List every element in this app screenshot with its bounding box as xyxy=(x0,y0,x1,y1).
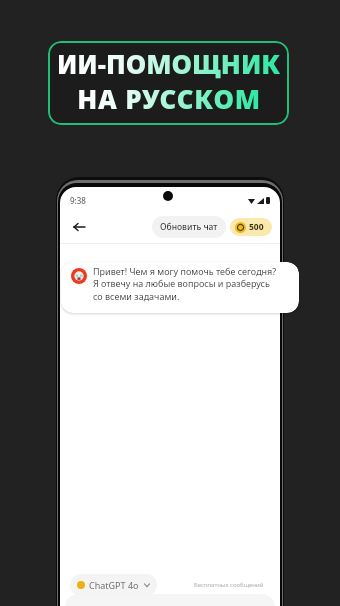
button[interactable]: Back xyxy=(68,216,90,238)
button[interactable]: Обновить чат xyxy=(152,216,226,238)
staticText: НА РУССКОМ xyxy=(77,81,261,116)
staticText: 9:38 xyxy=(70,195,86,206)
staticText: Бесплатных сообщений xyxy=(194,581,264,589)
button[interactable]: 500 xyxy=(230,218,272,236)
button[interactable]: ChatGPT 4o xyxy=(70,574,157,596)
staticText: ChatGPT 4o xyxy=(89,579,139,591)
staticText: Обновить чат xyxy=(160,221,218,233)
staticText: 500 xyxy=(249,221,264,233)
staticText: ИИ-ПОМОЩНИК xyxy=(57,46,280,81)
staticText: Привет! Чем я могу помочь тебе сегодня? … xyxy=(93,265,280,303)
